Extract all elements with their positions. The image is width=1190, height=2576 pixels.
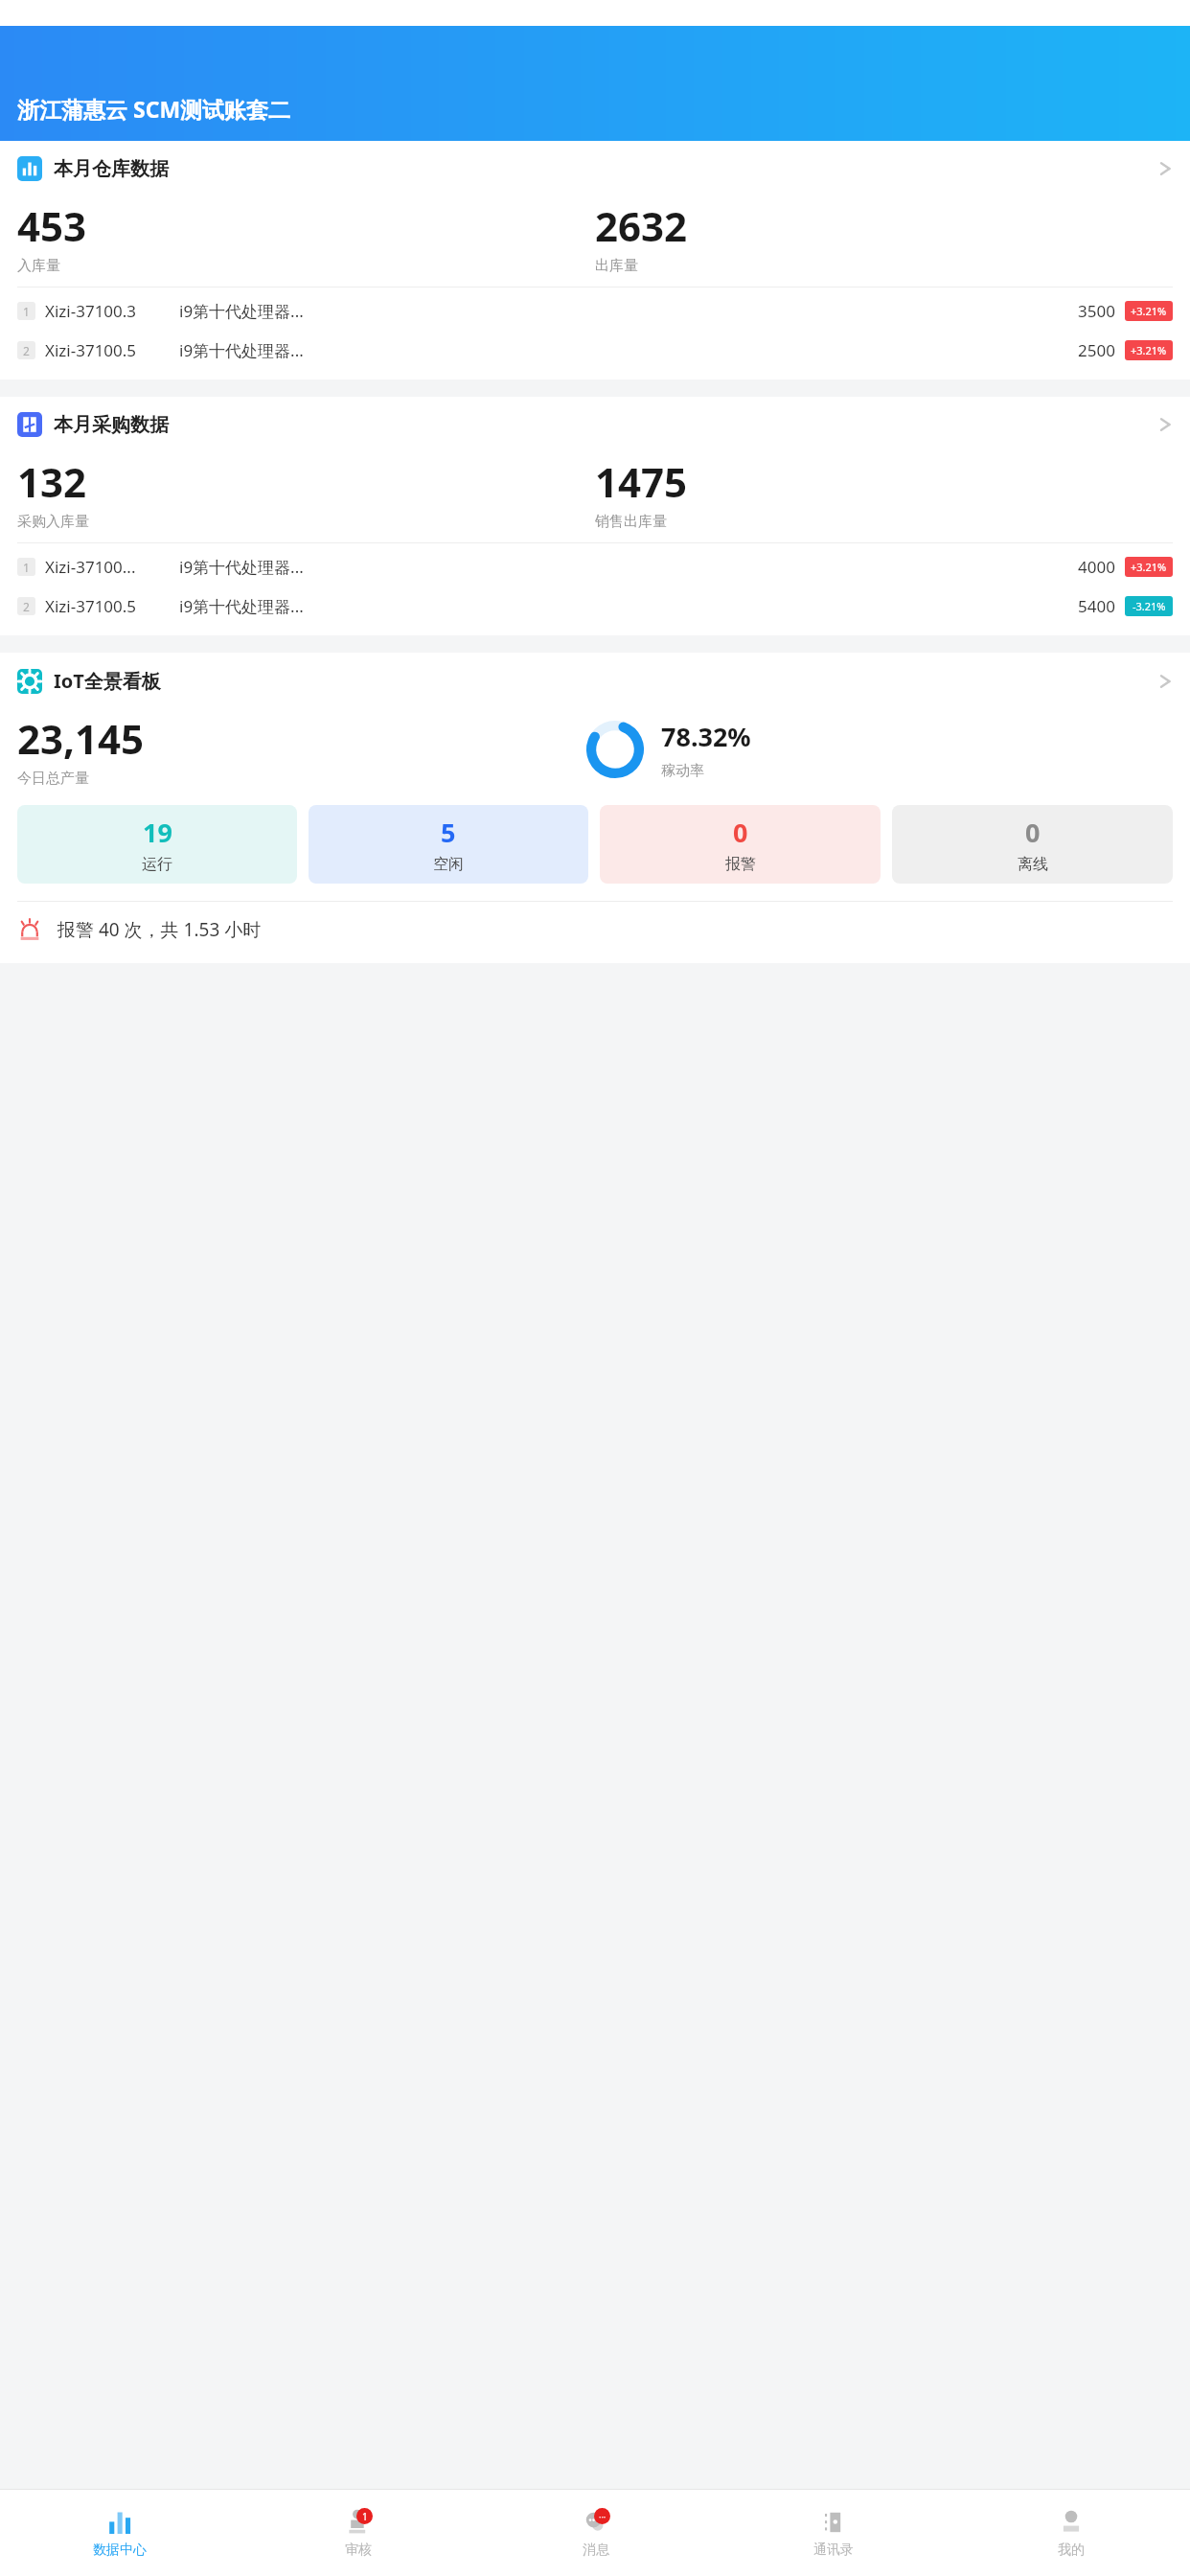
- staticText: 今日总产量: [17, 770, 89, 788]
- staticText: ···: [599, 2511, 606, 2522]
- staticText: 23,145: [17, 711, 145, 766]
- button[interactable]: Contacts: [715, 2490, 952, 2576]
- staticText: +3.21%: [1131, 560, 1167, 574]
- button[interactable]: Approval: [239, 2490, 477, 2576]
- staticText: 2632: [595, 198, 688, 253]
- other: Data center: [105, 2508, 134, 2537]
- staticText: 2: [23, 599, 30, 614]
- staticText: -3.21%: [1133, 599, 1166, 613]
- button[interactable]: Data center: [0, 2490, 239, 2576]
- staticText: 运行: [142, 855, 172, 874]
- button[interactable]: IoT全景看板: [0, 653, 1190, 698]
- staticText: +3.21%: [1131, 304, 1167, 318]
- staticText: 132: [17, 454, 87, 509]
- button[interactable]: Profile: [952, 2490, 1190, 2576]
- staticText: 453: [17, 198, 87, 253]
- button[interactable]: 0: [600, 805, 881, 884]
- other: Approval: [344, 2508, 373, 2537]
- other: More: [1157, 156, 1173, 181]
- other: More: [1157, 412, 1173, 437]
- staticText: 浙江蒲惠云 SCM测试账套二: [17, 94, 291, 124]
- staticText: 0: [1025, 815, 1041, 850]
- button[interactable]: 本月采购数据: [0, 397, 1190, 441]
- staticText: 离线: [1018, 855, 1048, 874]
- staticText: 出库量: [595, 257, 638, 275]
- staticText: 销售出库量: [595, 513, 667, 531]
- staticText: Xizi-37100...: [45, 556, 179, 578]
- staticText: 4000: [1056, 556, 1115, 578]
- staticText: 1: [23, 304, 30, 319]
- staticText: 5400: [1056, 595, 1115, 617]
- staticText: 2500: [1056, 339, 1115, 361]
- staticText: 稼动率: [661, 762, 704, 780]
- staticText: 0: [733, 815, 748, 850]
- staticText: 2: [23, 343, 30, 358]
- staticText: 78.32%: [661, 719, 751, 754]
- staticText: 1: [362, 2510, 368, 2523]
- staticText: 1: [23, 560, 30, 575]
- button[interactable]: 1: [0, 547, 1190, 586]
- staticText: Xizi-37100.5: [45, 595, 179, 617]
- button[interactable]: 0: [892, 805, 1173, 884]
- staticText: 数据中心: [93, 2541, 147, 2559]
- button[interactable]: 19: [17, 805, 297, 884]
- staticText: 本月仓库数据: [54, 157, 169, 181]
- staticText: Xizi-37100.5: [45, 339, 179, 361]
- staticText: 通讯录: [813, 2541, 854, 2559]
- staticText: 1475: [595, 454, 688, 509]
- staticText: 3500: [1056, 300, 1115, 322]
- button[interactable]: 5: [309, 805, 588, 884]
- staticText: i9第十代处理器...: [179, 300, 1056, 322]
- staticText: 报警: [725, 855, 756, 874]
- button[interactable]: 报警 40 次，共 1.53 小时: [0, 902, 1190, 950]
- staticText: i9第十代处理器...: [179, 556, 1056, 578]
- staticText: 审核: [345, 2541, 372, 2559]
- staticText: 报警 40 次，共 1.53 小时: [57, 917, 262, 942]
- other: Profile: [1057, 2508, 1086, 2537]
- other: More: [1157, 669, 1173, 694]
- staticText: 入库量: [17, 257, 60, 275]
- button[interactable]: 本月仓库数据: [0, 141, 1190, 185]
- staticText: i9第十代处理器...: [179, 595, 1056, 617]
- staticText: Xizi-37100.3: [45, 300, 179, 322]
- button[interactable]: 1: [0, 291, 1190, 331]
- button[interactable]: 2: [0, 586, 1190, 626]
- staticText: 采购入库量: [17, 513, 89, 531]
- staticText: IoT全景看板: [54, 668, 161, 694]
- staticText: 19: [143, 815, 172, 850]
- staticText: 空闲: [433, 855, 464, 874]
- staticText: 5: [441, 815, 456, 850]
- staticText: 消息: [583, 2541, 609, 2559]
- staticText: 我的: [1058, 2541, 1085, 2559]
- button[interactable]: Messages: [477, 2490, 715, 2576]
- staticText: 本月采购数据: [54, 413, 169, 437]
- button[interactable]: 2: [0, 331, 1190, 370]
- staticText: +3.21%: [1131, 343, 1167, 357]
- staticText: i9第十代处理器...: [179, 339, 1056, 361]
- other: Messages: [582, 2508, 610, 2537]
- other: Contacts: [819, 2508, 848, 2537]
